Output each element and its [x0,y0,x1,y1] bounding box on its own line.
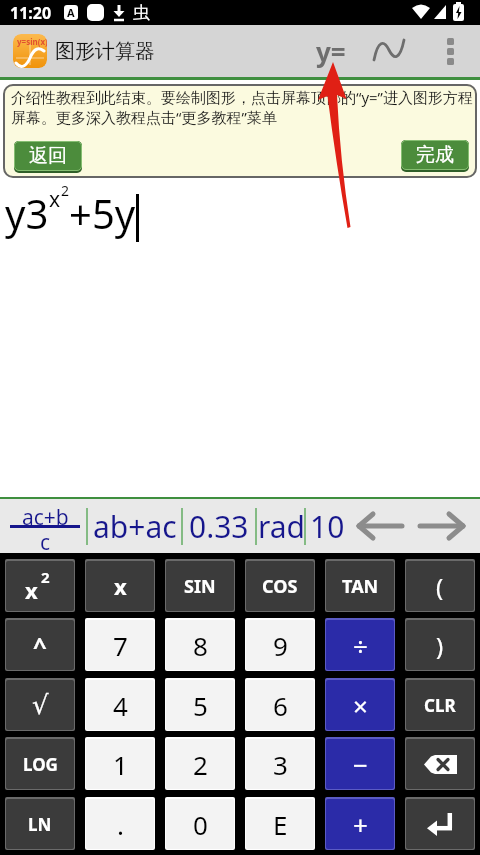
staticText: 完成 [416,143,454,167]
button[interactable]: 8 [166,620,234,670]
staticText: 4 [113,688,128,723]
button[interactable]: SIN [166,561,234,611]
button[interactable]: × [326,680,394,730]
button[interactable]: LN [6,799,74,849]
staticText: y=sin(x) [17,36,47,47]
button[interactable]: . [86,799,154,849]
button[interactable]: ac+b [6,499,84,553]
button[interactable]: TAN [326,561,394,611]
staticText: ÷ [353,628,368,663]
button[interactable]: 2 [166,739,234,789]
staticText: ab+ac [93,506,177,547]
staticText: E [273,807,288,842]
button[interactable]: 1 [86,739,154,789]
button[interactable] [368,29,412,73]
staticText: 8 [193,628,208,663]
button[interactable]: rad [254,499,310,553]
staticText: 7 [113,628,128,663]
button[interactable]: √ [6,680,74,730]
staticText: CLR [424,694,456,717]
button[interactable]: CLR [406,680,474,730]
staticText: x [25,575,38,605]
button[interactable]: + [326,799,394,849]
button[interactable]: COS [246,561,314,611]
button[interactable]: ^ [6,620,74,670]
button[interactable]: y= [306,29,356,73]
staticText: 0.33 [189,506,249,547]
button[interactable]: − [326,739,394,789]
staticText: + [353,807,368,842]
button[interactable]: x [6,561,74,611]
button[interactable]: ( [406,561,474,611]
staticText: ^ [33,629,47,662]
staticText: x [49,185,61,214]
staticText: 11:20 [10,2,52,24]
button[interactable] [406,799,474,849]
staticText: 介绍性教程到此结束。要绘制图形，点击屏幕顶部的“y=”进入图形方程 [11,87,474,107]
button[interactable] [414,499,472,553]
button[interactable]: ÷ [326,620,394,670]
staticText: LOG [23,753,58,776]
button[interactable]: 10 [306,499,348,553]
staticText: 5 [193,688,208,723]
button[interactable] [350,499,408,553]
staticText: 1 [113,747,128,782]
staticText: x [114,571,127,601]
staticText: 屏幕。更多深入教程点击“更多教程”菜单 [11,107,277,127]
button[interactable]: ) [406,620,474,670]
staticText: LN [28,813,52,836]
staticText: 9 [273,628,288,663]
staticText: × [353,688,368,723]
staticText: √ [32,690,49,720]
staticText: ac+b [22,503,69,525]
staticText: +5y [69,186,136,240]
staticText: ) [436,629,444,662]
staticText: SIN [184,574,216,599]
button[interactable]: 完成 [401,140,469,170]
button[interactable]: 6 [246,680,314,730]
button[interactable]: x [86,561,154,611]
staticText: 2 [41,567,50,587]
staticText: 2 [61,181,70,200]
staticText: 10 [310,506,345,547]
button[interactable]: 3 [246,739,314,789]
button[interactable]: 0 [166,799,234,849]
button[interactable] [406,739,474,789]
staticText: rad [258,506,306,547]
staticText: y3 [5,186,49,240]
button[interactable]: E [246,799,314,849]
staticText: . [117,807,124,842]
staticText: 6 [273,688,288,723]
button[interactable]: ab+ac [90,499,180,553]
staticText: 0 [193,807,208,842]
button[interactable]: 5 [166,680,234,730]
staticText: y= [316,34,346,69]
staticText: 图形计算器 [55,39,155,64]
button[interactable]: 返回 [14,141,82,171]
button[interactable] [432,29,468,73]
button[interactable]: 7 [86,620,154,670]
staticText: A [67,5,75,20]
staticText: 返回 [29,144,67,168]
staticText: TAN [342,574,379,599]
staticText: c [40,528,51,550]
staticText: 2 [193,747,208,782]
button[interactable]: 4 [86,680,154,730]
staticText: COS [262,574,298,599]
staticText: 虫 [133,2,150,23]
staticText: ( [436,570,444,603]
staticText: − [353,747,368,782]
button[interactable]: 9 [246,620,314,670]
staticText: 3 [273,747,288,782]
button[interactable]: LOG [6,739,74,789]
button[interactable]: 0.33 [186,499,252,553]
